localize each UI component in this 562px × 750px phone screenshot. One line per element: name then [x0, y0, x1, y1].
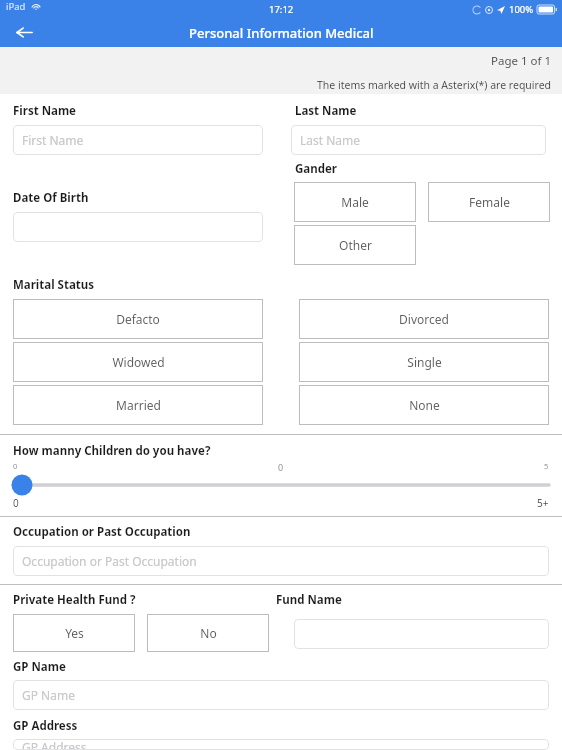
staticText: Occupation or Past Occupation [22, 553, 197, 569]
button[interactable]: Single [299, 342, 549, 382]
staticText: Married [116, 397, 161, 413]
staticText: Date Of Birth [13, 190, 89, 206]
button[interactable]: Widowed [13, 342, 263, 382]
button[interactable]: Back [8, 18, 40, 47]
staticText: Last Name [300, 132, 361, 148]
staticText: Page 1 of 1 [491, 53, 552, 69]
button[interactable] [294, 619, 549, 649]
staticText: iPad [6, 0, 26, 13]
button[interactable]: Occupation or Past Occupation [13, 546, 549, 576]
button[interactable]: No [147, 614, 269, 652]
staticText: GP Name [22, 687, 75, 703]
button[interactable]: Married [13, 385, 263, 425]
staticText: Defacto [116, 311, 160, 327]
staticText: Female [469, 194, 510, 210]
staticText: GP Name [13, 659, 66, 675]
staticText: Marital Status [13, 277, 95, 293]
staticText: Occupation or Past Occupation [13, 524, 191, 540]
staticText: Personal Information Medical [189, 24, 374, 42]
staticText: Last Name [295, 103, 357, 119]
button[interactable]: GP Name [13, 680, 549, 710]
staticText: Gander [295, 161, 337, 177]
button[interactable]: Female [428, 182, 550, 222]
button[interactable]: GP Address [13, 739, 549, 750]
staticText: First Name [13, 103, 76, 119]
staticText: Divorced [399, 311, 449, 327]
button[interactable] [13, 212, 263, 242]
staticText: 0 [13, 461, 18, 471]
staticText: How manny Children do you have? [13, 443, 211, 459]
staticText: None [409, 397, 440, 413]
staticText: Fund Name [276, 592, 342, 608]
button[interactable]: Divorced [299, 299, 549, 339]
staticText: Widowed [112, 354, 165, 370]
button[interactable]: First Name [13, 125, 263, 155]
button[interactable]: Defacto [13, 299, 263, 339]
staticText: Other [339, 237, 372, 253]
button[interactable] [0, 474, 562, 496]
button[interactable]: Yes [13, 614, 135, 652]
staticText: 0 [13, 496, 19, 510]
staticText: Male [341, 194, 369, 210]
staticText: 5 [544, 461, 549, 471]
staticText: 100% [509, 3, 534, 16]
staticText: The items marked with a Asterix(*) are r… [317, 78, 552, 92]
staticText: Yes [65, 625, 84, 641]
staticText: 0 [278, 461, 284, 473]
staticText: Private Health Fund ? [13, 592, 136, 608]
button[interactable]: Other [294, 225, 416, 265]
button[interactable]: Last Name [291, 125, 546, 155]
button[interactable]: Male [294, 182, 416, 222]
staticText: 5+ [537, 496, 549, 510]
staticText: GP Address [22, 739, 87, 750]
staticText: First Name [22, 132, 84, 148]
staticText: Single [407, 354, 442, 370]
button[interactable]: None [299, 385, 549, 425]
staticText: GP Address [13, 718, 78, 734]
staticText: No [200, 625, 217, 641]
staticText: 17:12 [269, 3, 294, 16]
